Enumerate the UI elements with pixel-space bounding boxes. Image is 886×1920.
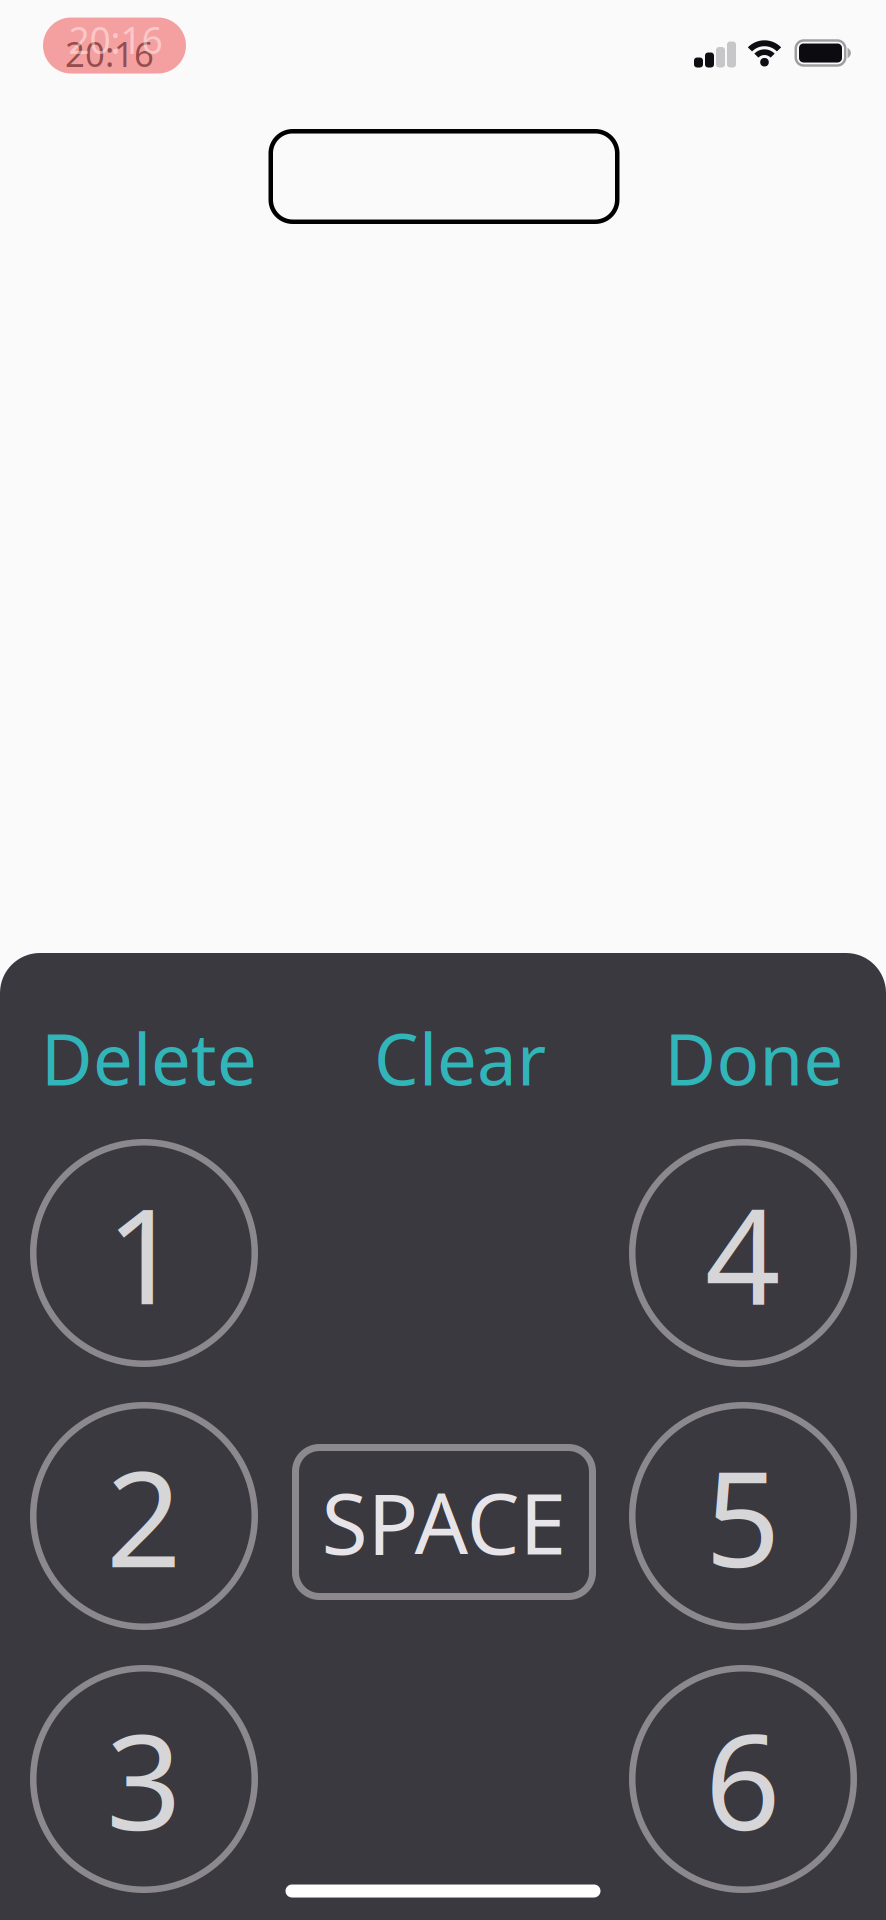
staticText: 20:16 xyxy=(68,15,162,64)
staticText: 3 xyxy=(106,1691,182,1867)
button[interactable]: Stop screen recording xyxy=(43,17,186,73)
button[interactable]: Done xyxy=(664,1011,843,1105)
staticText: Delete xyxy=(41,1011,257,1105)
button[interactable]: 2 xyxy=(30,1402,258,1630)
button[interactable]: Delete xyxy=(41,1011,257,1105)
staticText: Clear xyxy=(374,1011,546,1105)
button[interactable]: 5 xyxy=(629,1402,857,1630)
button[interactable]: 6 xyxy=(629,1665,857,1893)
button[interactable]: SPACE xyxy=(292,1444,596,1600)
button[interactable]: Clear xyxy=(374,1011,546,1105)
button[interactable]: Text input xyxy=(268,129,619,224)
staticText: 4 xyxy=(705,1165,781,1341)
staticText: 1 xyxy=(106,1165,182,1341)
button[interactable]: 3 xyxy=(30,1665,258,1893)
staticText: SPACE xyxy=(321,1466,566,1578)
staticText: 6 xyxy=(705,1691,781,1867)
staticText: 20:16 xyxy=(65,30,154,76)
button[interactable]: 4 xyxy=(629,1139,857,1367)
button[interactable]: 1 xyxy=(30,1139,258,1367)
staticText: Done xyxy=(664,1011,843,1105)
staticText: 5 xyxy=(705,1428,781,1604)
staticText: 2 xyxy=(106,1428,182,1604)
